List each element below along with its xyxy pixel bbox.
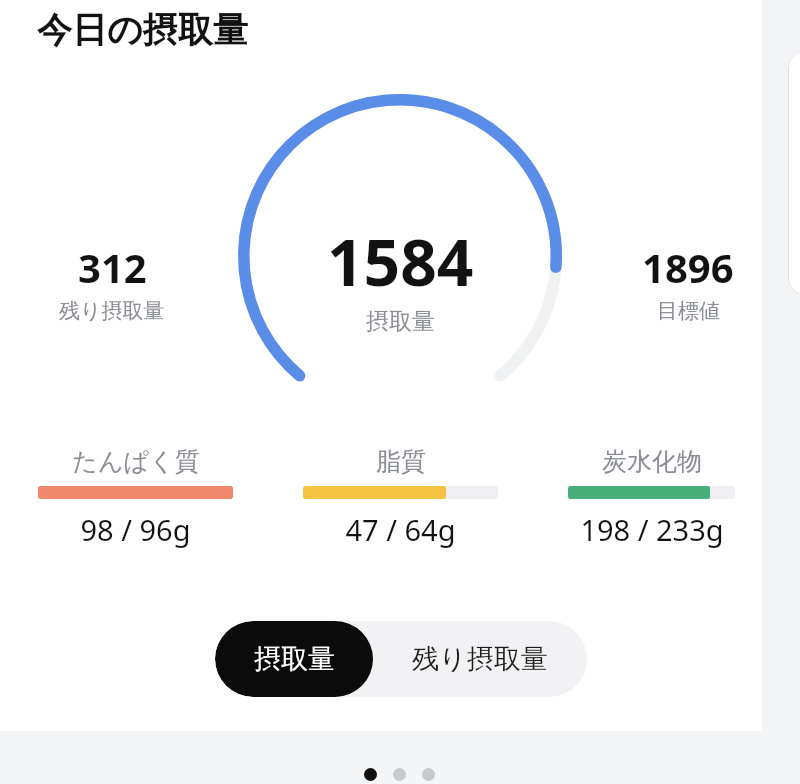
button[interactable]: Page 1, current [364,768,377,781]
staticText: 98 / 96g [80,510,191,549]
staticText: 炭水化物 [602,446,702,477]
staticText: 残り摂取量 [412,642,548,676]
staticText: 1896 [642,240,734,294]
button[interactable]: Page 2 [393,768,406,781]
staticText: 312 [78,240,147,294]
button[interactable]: Page 3 [422,768,435,781]
staticText: 脂質 [376,446,426,477]
staticText: 47 / 64g [345,510,456,549]
staticText: 残り摂取量 [59,298,165,324]
staticText: 1584 [327,218,474,305]
staticText: 今日の摂取量 [37,8,248,52]
staticText: 目標値 [657,298,720,324]
button[interactable]: 炭水化物 [568,446,735,549]
button[interactable] [788,50,800,296]
staticText: たんぱく質 [72,446,200,477]
staticText: 198 / 233g [580,510,724,549]
button[interactable]: 脂質 [303,446,498,549]
staticText: 摂取量 [366,307,435,336]
button[interactable]: 摂取量 [215,621,373,697]
staticText: 摂取量 [254,642,335,676]
button[interactable]: 残り摂取量 [373,621,587,697]
button[interactable]: たんぱく質 [38,446,233,549]
